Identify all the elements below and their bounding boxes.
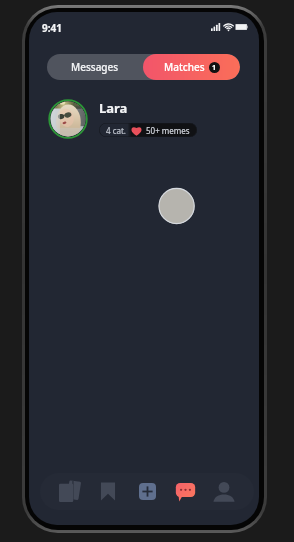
staticText: 1	[212, 63, 217, 73]
button[interactable]: Messages	[170, 473, 200, 510]
staticText: Lara	[99, 99, 128, 117]
button[interactable]: Profile	[209, 473, 239, 510]
button[interactable]: Saved	[93, 473, 123, 510]
staticText: 9:41	[42, 21, 62, 35]
staticText: Messages	[71, 60, 119, 74]
button[interactable]: Messages	[47, 54, 143, 80]
button[interactable]: Lara	[29, 99, 259, 139]
button[interactable]: Create	[132, 473, 162, 510]
staticText: 50+ memes	[146, 125, 190, 136]
staticText: 4 cat.	[106, 125, 127, 136]
staticText: Matches	[164, 60, 205, 74]
button[interactable]: Cards	[54, 473, 84, 510]
button[interactable]: Matches	[143, 54, 240, 80]
